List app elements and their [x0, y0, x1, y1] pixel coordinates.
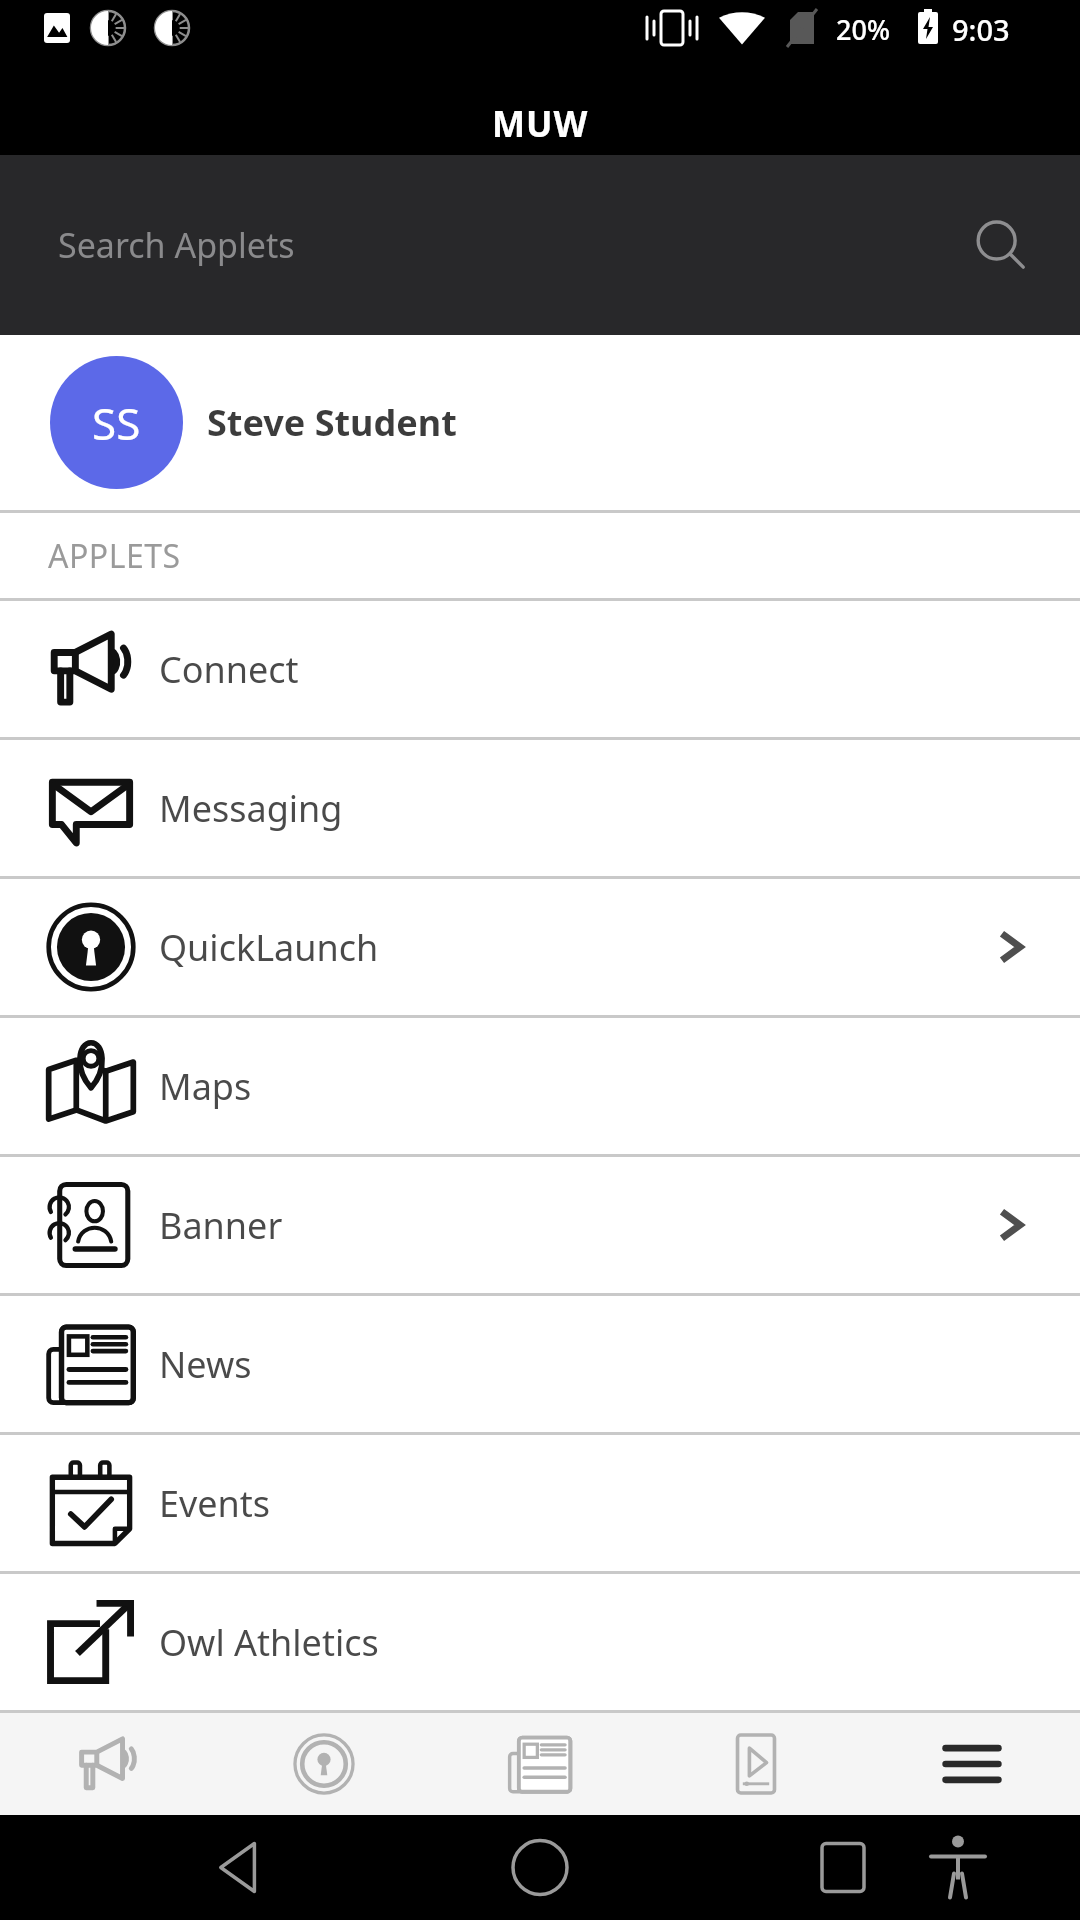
staticText: Search Applets [58, 222, 295, 268]
button[interactable]: Search Applets [0, 155, 1080, 335]
button[interactable]: Events [0, 1435, 1080, 1571]
button[interactable]: News [0, 1296, 1080, 1432]
other: Search [972, 217, 1028, 273]
staticText: 9:03 [952, 10, 1010, 49]
staticText: Maps [159, 1062, 1080, 1111]
button[interactable]: Menu [864, 1713, 1080, 1815]
button[interactable]: QuickLaunch [0, 879, 1080, 1015]
staticText: News [159, 1340, 1080, 1389]
button[interactable]: Media [648, 1713, 864, 1815]
staticText: APPLETS [48, 534, 181, 578]
staticText: MUW [492, 100, 589, 148]
button[interactable]: Connect [0, 601, 1080, 737]
staticText: Banner [159, 1201, 992, 1250]
staticText: Connect [159, 645, 1080, 694]
button[interactable]: SS [0, 335, 1080, 510]
staticText: SS [92, 393, 141, 453]
button[interactable]: QuickLaunch [216, 1713, 432, 1815]
staticText: 20% [836, 11, 890, 48]
button[interactable]: News [432, 1713, 648, 1815]
staticText: Events [159, 1479, 1080, 1528]
button[interactable]: Maps [0, 1018, 1080, 1154]
staticText: Steve Student [207, 398, 457, 447]
button[interactable]: Owl Athletics [0, 1574, 1080, 1710]
button[interactable]: Connect [0, 1713, 216, 1815]
button[interactable]: Banner [0, 1157, 1080, 1293]
staticText: QuickLaunch [159, 923, 992, 972]
button[interactable]: Messaging [0, 740, 1080, 876]
staticText: Messaging [159, 784, 1080, 833]
staticText: Owl Athletics [159, 1618, 1080, 1667]
